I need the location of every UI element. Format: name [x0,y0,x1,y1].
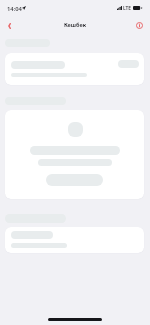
staticText: Кешбек [0,21,150,28]
button[interactable] [5,227,144,253]
staticText: 14:04 [7,5,22,13]
button[interactable] [46,174,103,186]
button[interactable] [5,53,144,85]
staticText: LTE [123,5,132,12]
button[interactable]: Back [0,16,18,35]
button[interactable]: Info [132,18,146,32]
